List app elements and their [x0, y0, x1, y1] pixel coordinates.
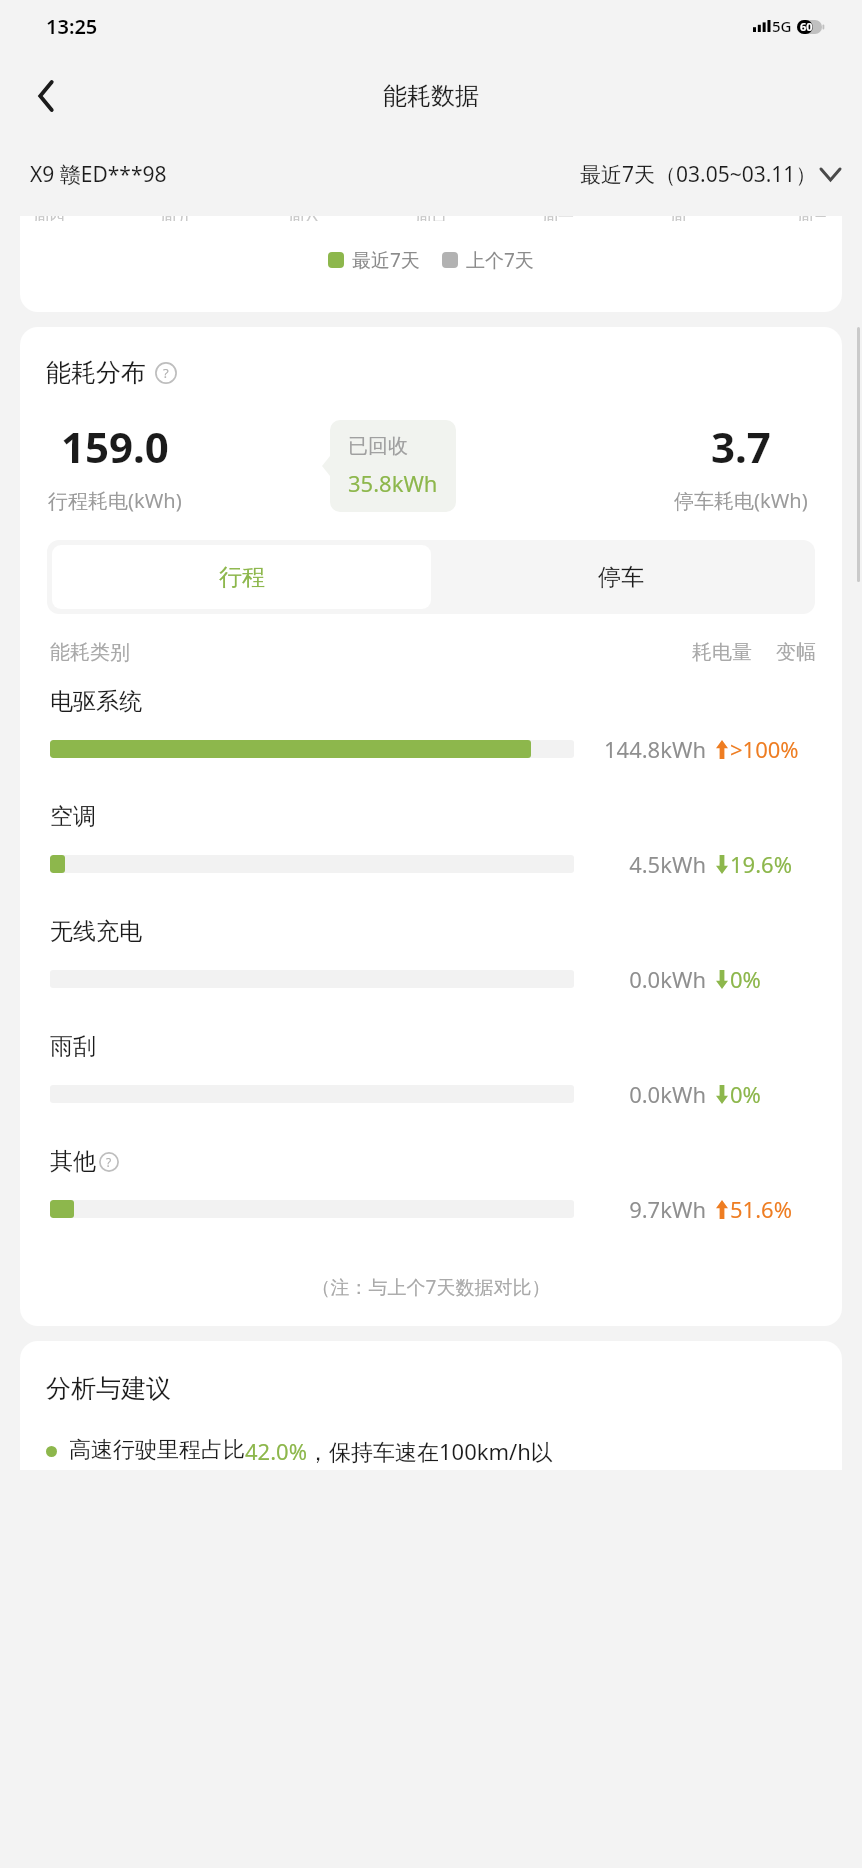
staticText: 已回收: [348, 434, 408, 459]
staticText: 0%: [730, 1079, 761, 1109]
staticText: 159.0: [61, 418, 169, 475]
button[interactable]: 停车: [431, 545, 810, 609]
staticText: ?: [106, 1154, 112, 1170]
staticText: 19.6%: [730, 849, 792, 879]
staticText: 雨刮: [50, 1032, 96, 1061]
staticText: （注：与上个7天数据对比）: [20, 1274, 842, 1300]
staticText: 13:25: [46, 13, 98, 40]
staticText: ?: [163, 364, 169, 382]
staticText: 35.8kWh: [348, 468, 438, 498]
button[interactable]: Help: [155, 362, 177, 384]
button[interactable]: Back: [20, 70, 72, 122]
staticText: 51.6%: [730, 1194, 792, 1224]
staticText: 周一: [542, 216, 574, 221]
staticText: X9 赣ED***98: [30, 160, 167, 189]
staticText: 9.7kWh: [590, 1194, 706, 1224]
staticText: 空调: [50, 802, 96, 831]
staticText: 高速行驶里程占比: [69, 1436, 245, 1464]
staticText: 分析与建议: [46, 1373, 171, 1404]
staticText: 周日: [415, 216, 447, 221]
staticText: 3.7: [711, 418, 771, 475]
staticText: 5G: [772, 16, 792, 36]
staticText: 周五: [160, 216, 192, 221]
staticText: 能耗类别: [50, 640, 130, 665]
staticText: 能耗数据: [383, 81, 479, 111]
staticText: 最近7天: [352, 247, 420, 273]
staticText: 能耗分布: [46, 357, 146, 388]
staticText: 电驱系统: [50, 687, 142, 716]
staticText: 停车耗电(kWh): [674, 487, 808, 514]
staticText: >100%: [730, 734, 799, 764]
staticText: 行程耗电(kWh): [48, 487, 182, 514]
staticText: 其他: [50, 1147, 96, 1176]
staticText: 变幅: [776, 640, 816, 665]
staticText: 周三: [797, 216, 829, 221]
staticText: 0.0kWh: [590, 1079, 706, 1109]
staticText: 最近7天（03.05~03.11）: [580, 160, 817, 189]
staticText: 停车: [598, 563, 644, 592]
staticText: 耗电量: [692, 640, 752, 665]
staticText: 行程: [219, 563, 265, 592]
staticText: 4.5kWh: [590, 849, 706, 879]
button[interactable]: 最近7天（03.05~03.11）: [580, 160, 840, 189]
button[interactable]: Help: [99, 1152, 119, 1172]
staticText: 42.0%: [245, 1436, 307, 1466]
button[interactable]: 行程: [52, 545, 431, 609]
staticText: 周二: [670, 216, 702, 221]
staticText: 144.8kWh: [590, 734, 706, 764]
staticText: 无线充电: [50, 917, 142, 946]
staticText: 60: [800, 19, 813, 34]
staticText: 周六: [288, 216, 320, 221]
staticText: 周四: [33, 216, 65, 221]
staticText: 0.0kWh: [590, 964, 706, 994]
staticText: 0%: [730, 964, 761, 994]
staticText: ，保持车速在100km/h以: [307, 1436, 553, 1466]
staticText: 上个7天: [466, 247, 534, 273]
